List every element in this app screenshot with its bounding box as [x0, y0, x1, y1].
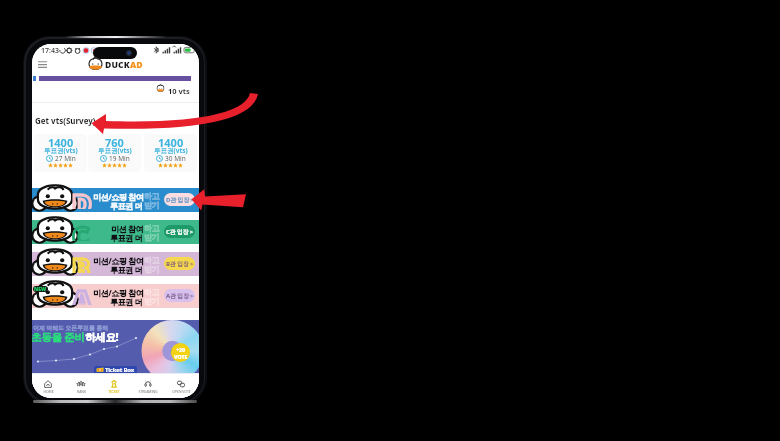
- button[interactable]: NEW: [32, 284, 199, 308]
- button[interactable]: D관 입장 >: [164, 193, 195, 206]
- staticText: 투표권(vts): [98, 146, 132, 155]
- button[interactable]: Ticket Box: [94, 366, 137, 374]
- staticText: TICKET: [108, 389, 120, 394]
- button[interactable]: A관 입장 >: [164, 289, 195, 302]
- staticText: C관 입장 >: [166, 228, 194, 236]
- staticText: 하고: [144, 191, 160, 201]
- button[interactable]: HOME: [32, 380, 64, 394]
- staticText: 투표권 더: [110, 296, 144, 307]
- staticText: DUCK: [105, 59, 130, 71]
- staticText: 19 Min: [109, 154, 130, 163]
- staticText: 하고: [144, 223, 160, 233]
- staticText: +20: [176, 346, 186, 353]
- button[interactable]: TICKET: [98, 380, 130, 394]
- staticText: 1400: [158, 135, 184, 150]
- staticText: 받기: [144, 232, 160, 242]
- staticText: RANK: [77, 389, 86, 394]
- staticText: 받기: [144, 264, 160, 274]
- staticText: 하고: [144, 287, 160, 297]
- staticText: HOME: [43, 389, 54, 394]
- button[interactable]: +20: [32, 320, 199, 373]
- button[interactable]: D: [32, 188, 199, 212]
- staticText: 760: [105, 135, 124, 150]
- staticText: 투표권 더: [110, 232, 144, 243]
- button[interactable]: 760: [88, 134, 141, 172]
- staticText: 하고: [144, 255, 160, 265]
- staticText: OPEN VOTE: [172, 389, 191, 394]
- staticText: D관 입장 >: [166, 196, 194, 204]
- staticText: AD: [130, 59, 143, 71]
- staticText: 투표권 더: [110, 264, 144, 275]
- staticText: NEW: [34, 286, 47, 292]
- staticText: A: [72, 281, 92, 305]
- staticText: 30 Min: [165, 154, 186, 163]
- staticText: C: [72, 217, 90, 241]
- staticText: 미션/쇼핑 참여: [93, 287, 144, 298]
- staticText: 이제 덕헤드 오픈투표를 통해: [33, 324, 109, 332]
- staticText: Ticket Box: [105, 366, 134, 374]
- staticText: 1400: [48, 135, 74, 150]
- button[interactable]: RANK: [65, 380, 97, 394]
- staticText: D: [72, 185, 92, 209]
- button[interactable]: C: [32, 220, 199, 244]
- staticText: 미션/쇼핑 참여: [93, 191, 144, 202]
- staticText: 받기: [144, 296, 160, 306]
- staticText: 17:43: [41, 46, 59, 56]
- staticText: A관 입장 >: [166, 292, 194, 300]
- staticText: 27 Min: [55, 154, 76, 163]
- staticText: Get vts(Survey): [35, 115, 96, 126]
- button[interactable]: Menu: [38, 61, 47, 69]
- staticText: 하세요!: [85, 330, 119, 344]
- button[interactable]: B관 입장 >: [164, 257, 195, 270]
- button[interactable]: OPEN VOTE: [165, 380, 197, 394]
- staticText: 투표권(vts): [154, 146, 188, 155]
- staticText: 미션 참여: [111, 223, 144, 234]
- button[interactable]: B: [32, 252, 199, 276]
- staticText: 투표권(vts): [44, 146, 78, 155]
- button[interactable]: STREAMING: [132, 380, 164, 394]
- staticText: 받기: [144, 200, 160, 210]
- staticText: 미션/쇼핑 참여: [93, 255, 144, 266]
- button[interactable]: 1400: [34, 134, 87, 172]
- staticText: STREAMING: [138, 389, 158, 394]
- staticText: B관 입장 >: [166, 260, 194, 268]
- staticText: VOTE: [174, 353, 188, 360]
- staticText: 초동을 준비: [32, 330, 85, 344]
- staticText: 투표권 더: [110, 200, 144, 211]
- button[interactable]: 1400: [144, 134, 197, 172]
- button[interactable]: C관 입장 >: [164, 225, 195, 238]
- staticText: 10 vts: [168, 86, 190, 96]
- staticText: B: [72, 249, 91, 273]
